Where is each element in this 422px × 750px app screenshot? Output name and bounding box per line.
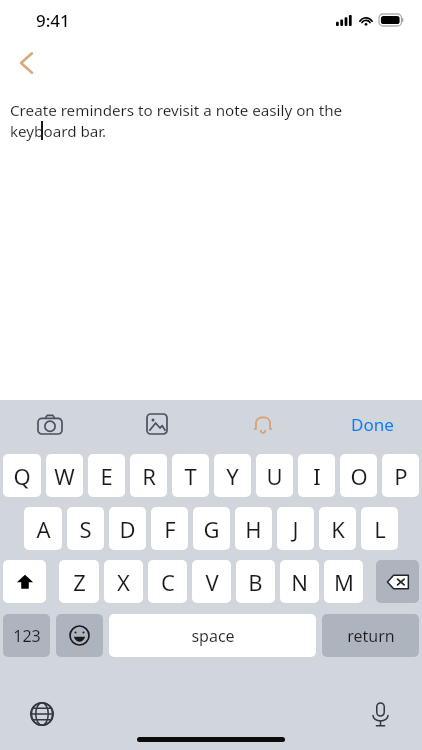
- button[interactable]: W: [46, 454, 83, 497]
- staticText: Done: [351, 413, 394, 436]
- button[interactable]: E: [88, 454, 125, 497]
- button[interactable]: Backspace: [376, 560, 419, 603]
- staticText: L: [374, 514, 386, 544]
- button[interactable]: L: [361, 507, 398, 550]
- button[interactable]: Q: [3, 454, 41, 497]
- button[interactable]: Back: [6, 44, 46, 82]
- staticText: T: [184, 461, 197, 491]
- staticText: J: [292, 514, 299, 544]
- button[interactable]: H: [235, 507, 272, 550]
- staticText: U: [266, 461, 283, 491]
- button[interactable]: Dictation: [362, 696, 398, 732]
- staticText: return: [347, 625, 395, 647]
- staticText: K: [331, 514, 345, 544]
- staticText: 123: [13, 625, 41, 647]
- button[interactable]: R: [130, 454, 167, 497]
- staticText: Q: [13, 461, 31, 491]
- button[interactable]: S: [67, 507, 104, 550]
- button[interactable]: M: [324, 560, 363, 603]
- button[interactable]: V: [192, 560, 231, 603]
- staticText: G: [203, 514, 220, 544]
- button[interactable]: space: [109, 614, 316, 657]
- button[interactable]: B: [236, 560, 275, 603]
- staticText: B: [248, 567, 263, 597]
- button[interactable]: T: [172, 454, 209, 497]
- button[interactable]: O: [340, 454, 377, 497]
- staticText: space: [191, 625, 235, 647]
- button[interactable]: Reminder: [243, 404, 283, 444]
- button[interactable]: return: [322, 614, 419, 657]
- button[interactable]: C: [148, 560, 187, 603]
- button[interactable]: J: [277, 507, 314, 550]
- button[interactable]: N: [280, 560, 319, 603]
- button[interactable]: Y: [214, 454, 251, 497]
- button[interactable]: Photos: [137, 404, 177, 444]
- staticText: V: [205, 567, 219, 597]
- staticText: W: [54, 461, 75, 491]
- staticText: N: [291, 567, 308, 597]
- button[interactable]: Done: [345, 407, 400, 442]
- staticText: Y: [226, 461, 239, 491]
- button[interactable]: D: [109, 507, 146, 550]
- staticText: M: [334, 567, 354, 597]
- button[interactable]: Shift: [3, 560, 46, 603]
- button[interactable]: U: [256, 454, 293, 497]
- staticText: I: [313, 461, 321, 491]
- button[interactable]: K: [319, 507, 356, 550]
- staticText: F: [164, 514, 176, 544]
- button[interactable]: F: [151, 507, 188, 550]
- button[interactable]: A: [24, 507, 62, 550]
- staticText: X: [117, 567, 130, 597]
- button[interactable]: I: [298, 454, 335, 497]
- staticText: Z: [73, 567, 86, 597]
- button[interactable]: 123: [3, 614, 50, 657]
- staticText: D: [119, 514, 136, 544]
- button[interactable]: G: [193, 507, 230, 550]
- staticText: O: [350, 461, 368, 491]
- staticText: Create reminders to revisit a note easil…: [10, 100, 412, 142]
- staticText: S: [79, 514, 92, 544]
- button[interactable]: Camera: [30, 404, 70, 444]
- staticText: A: [36, 514, 51, 544]
- staticText: P: [394, 461, 408, 491]
- button[interactable]: Z: [59, 560, 99, 603]
- button[interactable]: P: [382, 454, 419, 497]
- staticText: E: [100, 461, 113, 491]
- staticText: R: [142, 461, 156, 491]
- button[interactable]: X: [104, 560, 143, 603]
- button[interactable]: Change keyboard: [24, 696, 60, 732]
- staticText: C: [161, 567, 175, 597]
- staticText: H: [245, 514, 262, 544]
- button[interactable]: Emoji: [56, 614, 103, 657]
- staticText: 9:41: [36, 9, 70, 32]
